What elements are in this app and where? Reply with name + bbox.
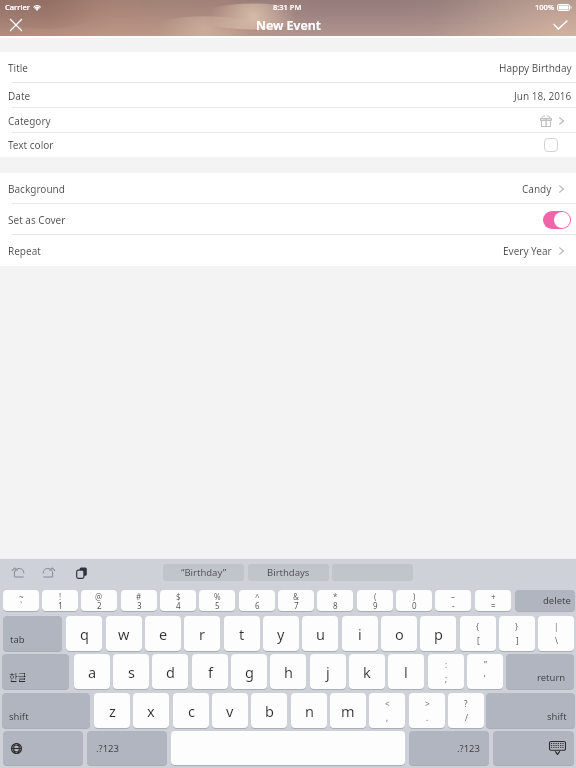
- button[interactable]: u: [302, 616, 338, 651]
- staticText: 8: [333, 600, 338, 611]
- button[interactable]: Switch keyboard: [3, 731, 83, 765]
- button[interactable]: !: [42, 590, 78, 611]
- button[interactable]: Text color: [0, 133, 576, 157]
- staticText: New Event: [256, 17, 321, 34]
- button[interactable]: Paste: [76, 567, 91, 581]
- button[interactable]: m: [330, 693, 366, 728]
- button[interactable]: w: [106, 616, 142, 651]
- button[interactable]: q: [66, 616, 102, 651]
- button[interactable]: Birthdays: [248, 564, 329, 581]
- button[interactable]: ^: [239, 590, 275, 611]
- button[interactable]: g: [231, 654, 267, 689]
- button[interactable]: Repeat: [0, 235, 576, 266]
- button[interactable]: +: [475, 590, 511, 611]
- button[interactable]: s: [113, 654, 149, 689]
- button[interactable]: Hide keyboard: [493, 731, 574, 765]
- button[interactable]: ”: [467, 654, 503, 689]
- button[interactable]: p: [420, 616, 456, 651]
- staticText: m: [341, 701, 355, 721]
- button[interactable]: {: [460, 616, 496, 651]
- button[interactable]: Set as Cover: [0, 204, 576, 235]
- button[interactable]: f: [192, 654, 228, 689]
- button[interactable]: >: [409, 693, 445, 728]
- staticText: &: [293, 591, 299, 602]
- button[interactable]: shift: [486, 693, 575, 728]
- button[interactable]: Date: [0, 83, 576, 108]
- staticText: Candy: [522, 182, 552, 196]
- staticText: 1: [58, 600, 63, 611]
- staticText: $: [176, 591, 181, 602]
- button[interactable]: y: [263, 616, 299, 651]
- button[interactable]: ): [396, 590, 432, 611]
- button[interactable]: c: [173, 693, 209, 728]
- button[interactable]: &: [278, 590, 314, 611]
- button[interactable]: *: [317, 590, 353, 611]
- button[interactable]: (: [357, 590, 393, 611]
- button[interactable]: e: [145, 616, 181, 651]
- button[interactable]: h: [270, 654, 306, 689]
- staticText: j: [326, 662, 330, 682]
- button[interactable]: z: [94, 693, 130, 728]
- button[interactable]: 한글: [2, 654, 69, 689]
- staticText: 100%: [535, 2, 555, 12]
- button[interactable]: a: [74, 654, 110, 689]
- button[interactable]: Category: [0, 108, 576, 133]
- staticText: 9: [373, 600, 378, 611]
- button[interactable]: <: [369, 693, 405, 728]
- button[interactable]: #: [121, 590, 157, 611]
- button[interactable]: l: [388, 654, 424, 689]
- button[interactable]: %: [199, 590, 235, 611]
- button[interactable]: Title: [0, 52, 576, 83]
- button[interactable]: n: [291, 693, 327, 728]
- button[interactable]: delete: [515, 590, 575, 611]
- button[interactable]: ?: [448, 693, 484, 728]
- button[interactable]: b: [251, 693, 287, 728]
- staticText: 3: [137, 600, 142, 611]
- staticText: Jun 18, 2016: [514, 89, 572, 103]
- button[interactable]: i: [342, 616, 378, 651]
- staticText: p: [434, 624, 443, 644]
- staticText: tab: [10, 633, 25, 646]
- button[interactable]: t: [224, 616, 260, 651]
- button[interactable]: Undo: [12, 567, 29, 581]
- staticText: –: [451, 591, 455, 602]
- staticText: *: [333, 591, 338, 602]
- staticText: (: [374, 591, 377, 602]
- button[interactable]: x: [133, 693, 169, 728]
- button[interactable]: tab: [3, 616, 62, 651]
- button[interactable]: shift: [2, 693, 90, 728]
- staticText: n: [305, 701, 314, 721]
- button[interactable]: return: [506, 654, 574, 689]
- button[interactable]: @: [81, 590, 117, 611]
- staticText: 6: [255, 600, 260, 611]
- button[interactable]: Background: [0, 173, 576, 204]
- button[interactable]: .?123: [87, 731, 167, 765]
- button[interactable]: v: [212, 693, 248, 728]
- button[interactable]: Close: [5, 14, 27, 36]
- staticText: t: [239, 624, 245, 644]
- staticText: #: [136, 591, 142, 602]
- button[interactable]: o: [381, 616, 417, 651]
- staticText: +: [491, 591, 496, 602]
- button[interactable]: k: [349, 654, 385, 689]
- button[interactable]: |: [538, 616, 574, 651]
- button[interactable]: r: [184, 616, 220, 651]
- button[interactable]: Redo: [43, 567, 60, 581]
- button[interactable]: Set as Cover: [543, 211, 571, 229]
- button[interactable]: –: [435, 590, 471, 611]
- staticText: /: [465, 712, 468, 723]
- staticText: >: [425, 698, 430, 709]
- button[interactable]: “Birthday”: [163, 564, 244, 581]
- button[interactable]: j: [310, 654, 346, 689]
- button[interactable]: :: [428, 654, 464, 689]
- button[interactable]: .?123: [409, 731, 489, 765]
- staticText: u: [316, 624, 325, 644]
- button[interactable]: }: [499, 616, 535, 651]
- staticText: shift: [547, 710, 567, 723]
- button[interactable]: Done: [549, 14, 571, 36]
- button[interactable]: $: [160, 590, 196, 611]
- button[interactable]: ~: [3, 590, 39, 611]
- button[interactable]: d: [152, 654, 188, 689]
